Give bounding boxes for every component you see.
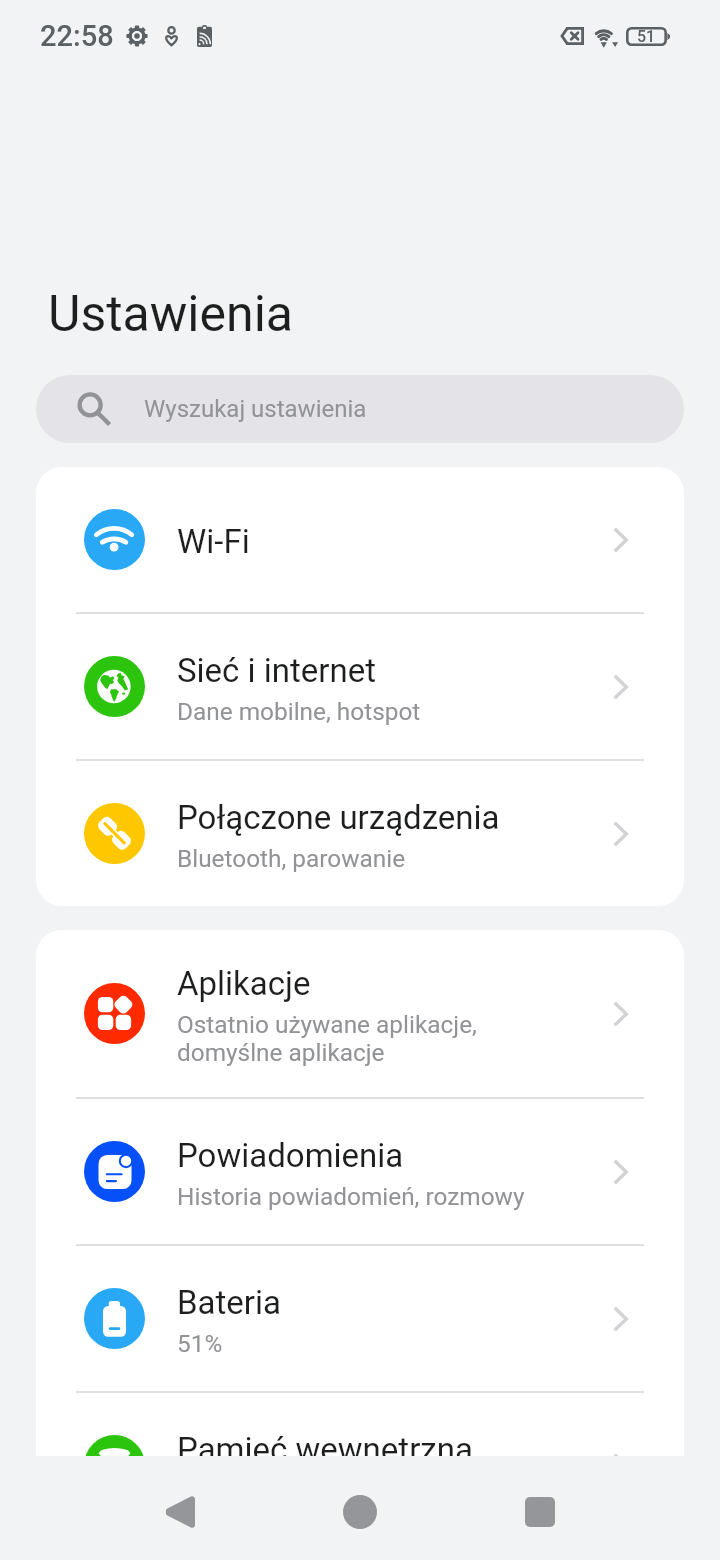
staticText: Użyto 25% - wolne 96 GB <box>177 1477 445 1505</box>
button[interactable]: Aplikacje <box>36 930 684 1097</box>
staticText: Historia powiadomień, rozmowy <box>177 1183 525 1211</box>
staticText: Ustawienia <box>48 285 293 344</box>
button[interactable]: Połączone urządzenia <box>36 761 684 906</box>
staticText: 51% <box>177 1330 223 1358</box>
button[interactable]: Bateria <box>36 1246 684 1391</box>
staticText: Bluetooth, parowanie <box>177 845 406 873</box>
staticText: Wi-Fi <box>177 518 250 562</box>
button[interactable]: Home <box>312 1464 408 1560</box>
staticText: Wyszukaj ustawienia <box>144 395 367 423</box>
staticText: Ostatnio używane aplikacje, domyślne apl… <box>177 1011 477 1067</box>
staticText: 22:58 <box>40 19 114 53</box>
staticText: Pamięć wewnętrzna <box>177 1426 473 1470</box>
button[interactable]: Wyszukaj ustawienia <box>36 375 684 443</box>
staticText: Aplikacje <box>177 960 311 1004</box>
button[interactable]: Pamięć wewnętrzna <box>36 1393 684 1538</box>
button[interactable]: Powiadomienia <box>36 1099 684 1244</box>
staticText: Powiadomienia <box>177 1132 404 1176</box>
staticText: Bateria <box>177 1279 281 1323</box>
staticText: Sieć i internet <box>177 647 377 691</box>
button[interactable]: Recents <box>492 1464 588 1560</box>
staticText: 51 <box>637 28 656 46</box>
button[interactable]: Wi-Fi <box>36 467 684 612</box>
staticText: Połączone urządzenia <box>177 794 500 838</box>
button[interactable]: Sieć i internet <box>36 614 684 759</box>
staticText: Dane mobilne, hotspot <box>177 698 421 726</box>
button[interactable]: Back <box>132 1464 228 1560</box>
